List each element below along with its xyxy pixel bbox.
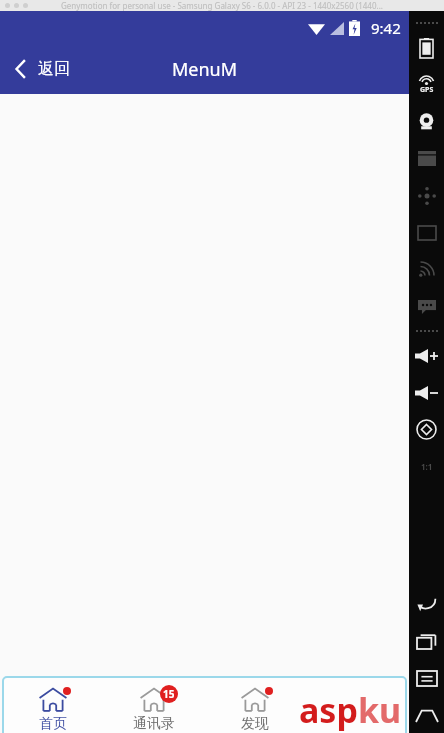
button[interactable]: SMS — [409, 288, 444, 325]
button[interactable]: Identifiers — [409, 214, 444, 251]
staticText: MenuM — [172, 57, 238, 82]
button[interactable]: Volume up — [409, 337, 444, 374]
button[interactable]: Recents — [409, 623, 444, 660]
button[interactable]: Rotate — [409, 411, 444, 448]
button[interactable]: 发现 — [204, 677, 305, 733]
button[interactable]: GPS — [409, 66, 444, 103]
button[interactable]: Pixel ratio — [409, 448, 444, 485]
staticText: 发现 — [241, 715, 269, 733]
button[interactable]: D-pad — [409, 177, 444, 214]
staticText: asp — [299, 687, 358, 733]
staticText: 9:42 — [371, 18, 401, 38]
staticText: 15 — [163, 687, 175, 701]
button[interactable]: 首页 — [3, 677, 103, 733]
button[interactable]: Volume down — [409, 374, 444, 411]
button[interactable]: Camera — [409, 103, 444, 140]
button[interactable]: Back — [409, 586, 444, 623]
button[interactable]: Network — [409, 251, 444, 288]
button[interactable]: Battery — [409, 29, 444, 66]
button[interactable]: Home — [409, 697, 444, 733]
staticText: Genymotion for personal use - Samsung Ga… — [61, 0, 383, 11]
button[interactable]: Menu — [409, 660, 444, 697]
staticText: ku — [358, 687, 402, 733]
button[interactable]: 返回 — [0, 52, 84, 86]
staticText: 通讯录 — [133, 715, 175, 733]
button[interactable]: 15 — [103, 677, 204, 733]
staticText: 1:1 — [421, 461, 433, 472]
staticText: 首页 — [39, 715, 67, 733]
staticText: 返回 — [38, 59, 70, 79]
staticText: GPS — [420, 85, 434, 95]
button[interactable]: Video — [409, 140, 444, 177]
